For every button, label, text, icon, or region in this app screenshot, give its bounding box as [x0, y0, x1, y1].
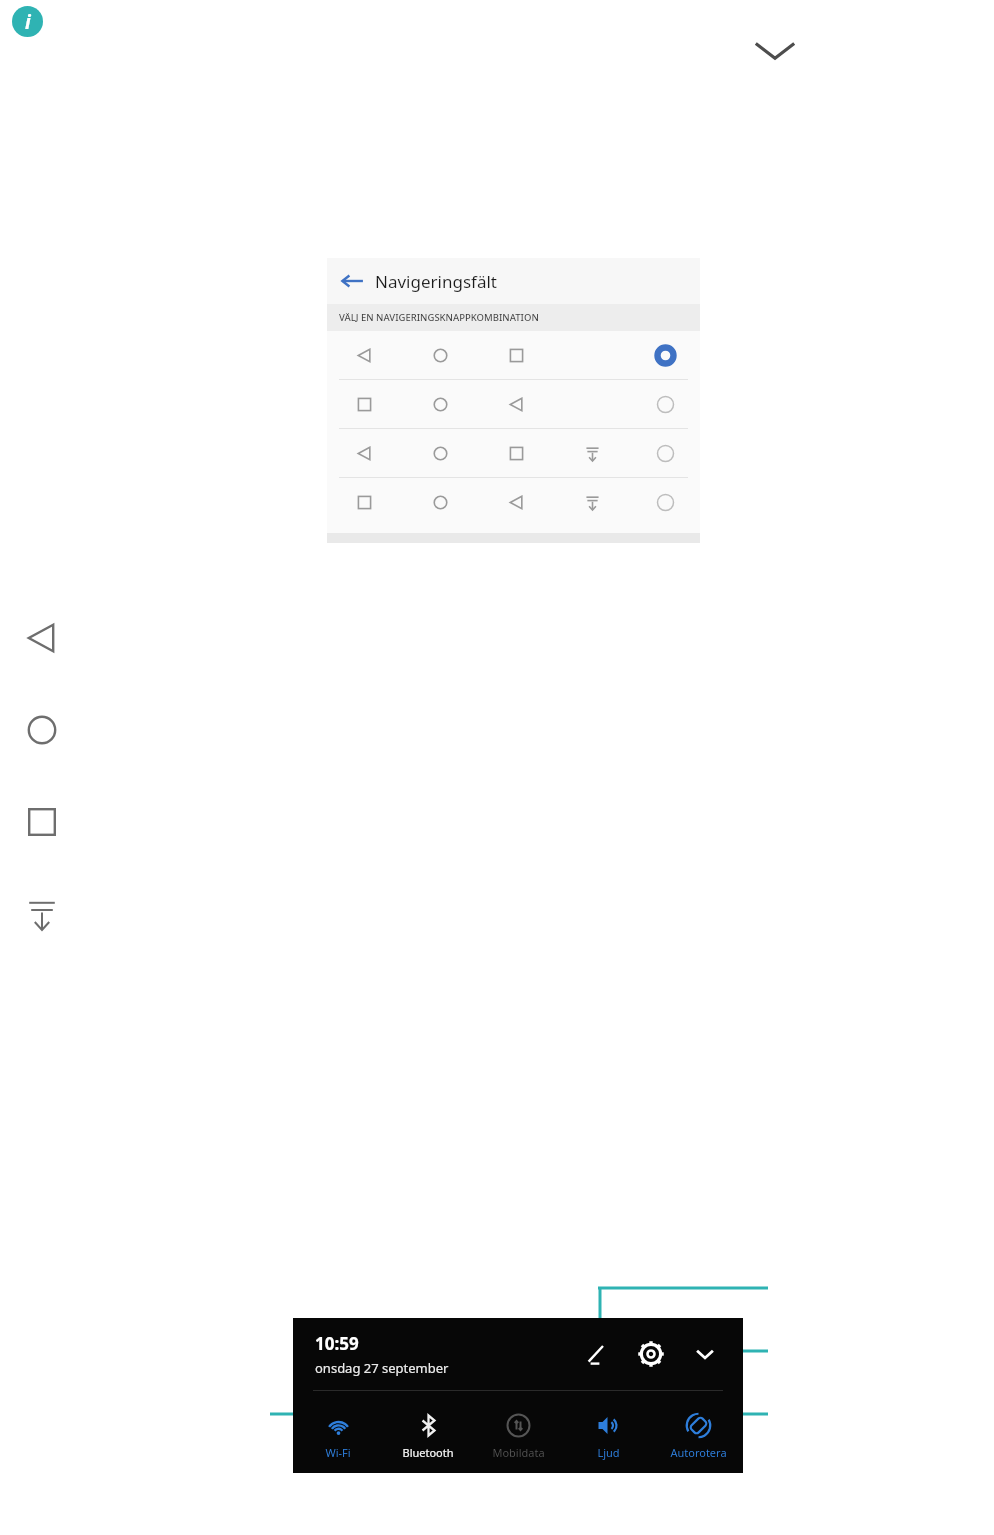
button[interactable]: Expand: [685, 1334, 725, 1374]
staticText: Wi-Fi: [325, 1445, 351, 1460]
button[interactable]: Information: [12, 6, 43, 37]
staticText: Mobildata: [492, 1445, 545, 1460]
staticText: Autorotera: [670, 1445, 727, 1460]
button[interactable]: Mobildata: [473, 1404, 563, 1460]
other: Back: [339, 268, 365, 294]
staticText: onsdag 27 september: [315, 1359, 449, 1377]
button[interactable]: Back: [327, 258, 700, 304]
button[interactable]: Notification shade: [22, 894, 62, 934]
button[interactable]: Recents: [22, 802, 62, 842]
staticText: 10:59: [315, 1332, 359, 1355]
button[interactable]: [327, 429, 700, 477]
staticText: Ljud: [597, 1445, 620, 1460]
button[interactable]: Ljud: [563, 1404, 653, 1460]
button[interactable]: [327, 380, 700, 428]
button[interactable]: Bluetooth: [383, 1404, 473, 1460]
button[interactable]: [327, 331, 700, 379]
button[interactable]: Autorotera: [653, 1404, 743, 1460]
button[interactable]: [327, 478, 700, 526]
staticText: Navigeringsfält: [375, 270, 497, 293]
button[interactable]: Settings: [631, 1334, 671, 1374]
button[interactable]: Back: [22, 618, 62, 658]
button[interactable]: Wi-Fi: [293, 1404, 383, 1460]
button[interactable]: Home: [22, 710, 62, 750]
staticText: VÄLJ EN NAVIGERINGSKNAPPKOMBINATION: [339, 311, 539, 324]
staticText: Bluetooth: [402, 1445, 454, 1460]
button[interactable]: Edit: [577, 1334, 617, 1374]
button[interactable]: Collapse: [745, 26, 805, 72]
staticText: i: [25, 9, 31, 35]
